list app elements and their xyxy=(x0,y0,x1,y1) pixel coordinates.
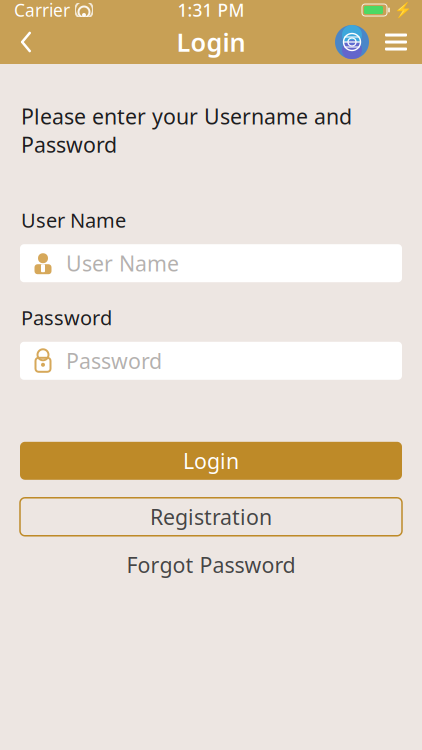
staticText: Registration xyxy=(150,503,272,531)
button[interactable]: Registration xyxy=(20,498,402,536)
staticText: Password xyxy=(21,304,112,331)
staticText: 1:31 PM xyxy=(177,0,244,21)
staticText: User Name xyxy=(66,249,179,277)
button[interactable]: Language xyxy=(330,22,374,62)
button[interactable]: Forgot Password xyxy=(20,552,402,578)
staticText: Login xyxy=(183,447,239,475)
staticText: Forgot Password xyxy=(126,551,295,579)
button[interactable]: Login xyxy=(20,442,402,480)
staticText: Please enter your Username and Password xyxy=(21,102,352,159)
staticText: Login xyxy=(176,25,245,59)
button[interactable]: Menu xyxy=(374,22,418,62)
button[interactable]: Back xyxy=(4,22,48,62)
staticText: ⚡ xyxy=(394,2,412,18)
staticText: User Name xyxy=(21,207,126,233)
staticText: Password xyxy=(66,347,162,375)
button[interactable]: Password xyxy=(20,342,402,380)
button[interactable]: User Name xyxy=(20,244,402,282)
staticText: Carrier xyxy=(14,0,70,21)
